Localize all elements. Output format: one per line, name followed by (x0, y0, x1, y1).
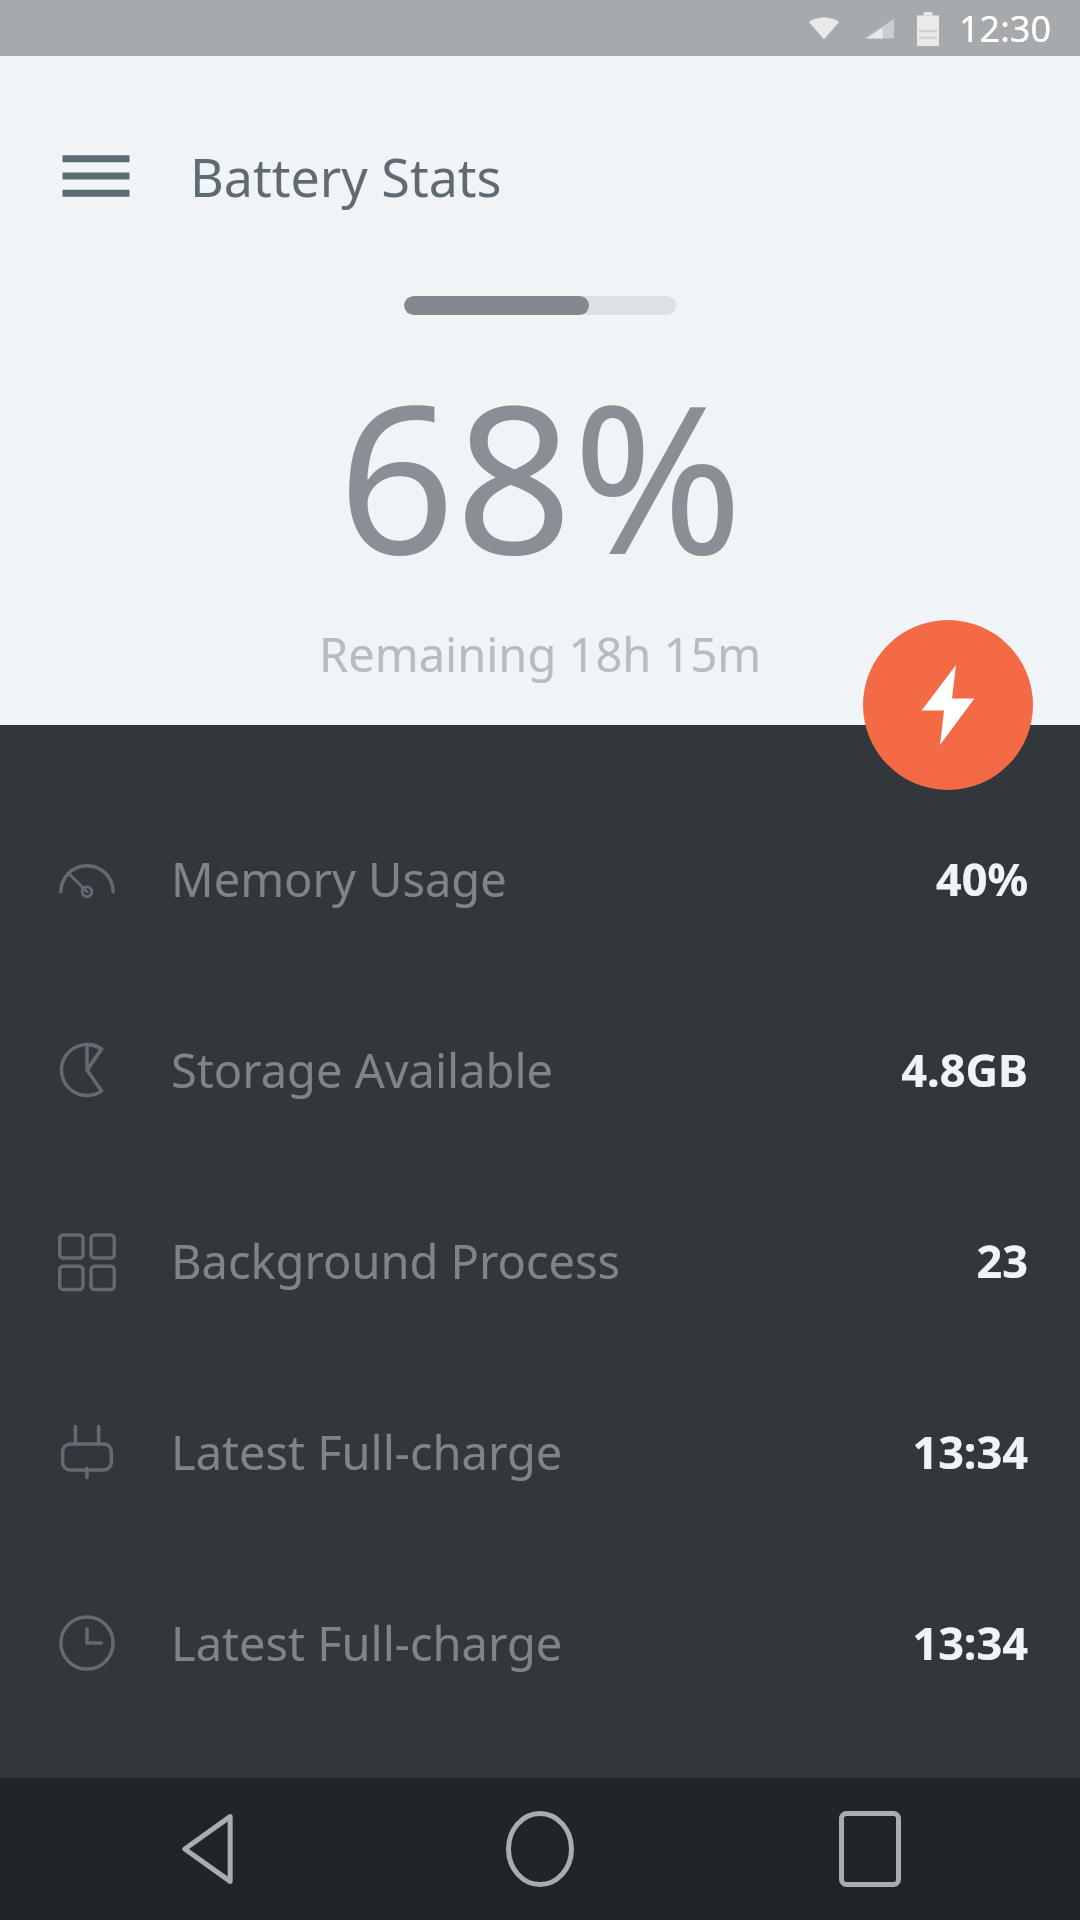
button[interactable]: Latest Full-charge (0, 1356, 1080, 1547)
staticText: Remaining 18h 15m (319, 622, 762, 686)
button[interactable]: Open navigation menu (60, 140, 132, 212)
staticText: 13:34 (912, 1612, 1028, 1673)
staticText: 23 (976, 1230, 1028, 1291)
staticText: 4.8GB (901, 1039, 1028, 1100)
staticText: 68% (338, 335, 743, 614)
staticText: Background Process (171, 1229, 621, 1293)
staticText: 13:34 (912, 1421, 1028, 1482)
staticText: Memory Usage (171, 847, 507, 911)
staticText: Latest Full-charge (171, 1611, 563, 1675)
button[interactable]: Storage Available (0, 974, 1080, 1165)
staticText: 12:30 (959, 4, 1052, 53)
staticText: 40% (935, 848, 1028, 909)
button[interactable]: Background Process (0, 1165, 1080, 1356)
button[interactable]: Latest Full-charge (0, 1547, 1080, 1738)
button[interactable]: Memory Usage (0, 783, 1080, 974)
button[interactable]: Back (90, 1778, 330, 1920)
button[interactable]: Charge battery (863, 620, 1033, 790)
staticText: Latest Full-charge (171, 1420, 563, 1484)
staticText: Battery Stats (190, 141, 502, 212)
staticText: Storage Available (171, 1038, 554, 1102)
button[interactable]: Recent apps (750, 1778, 990, 1920)
button[interactable]: Home (420, 1778, 660, 1920)
